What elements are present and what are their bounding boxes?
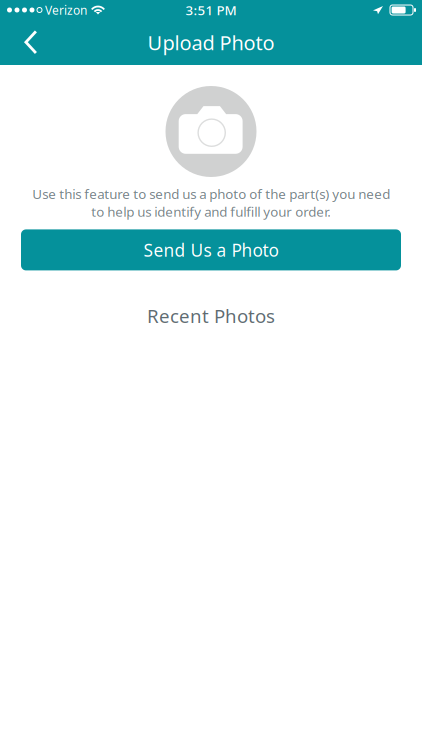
button[interactable]: Send Us a Photo (21, 229, 401, 270)
staticText: Use this feature to send us a photo of t… (32, 185, 390, 220)
staticText: Recent Photos (147, 303, 275, 328)
button[interactable]: Back (7, 20, 55, 64)
staticText: Verizon (45, 2, 87, 18)
staticText: 3:51 PM (185, 1, 236, 19)
staticText: Send Us a Photo (143, 238, 278, 261)
staticText: Upload Photo (147, 29, 274, 56)
